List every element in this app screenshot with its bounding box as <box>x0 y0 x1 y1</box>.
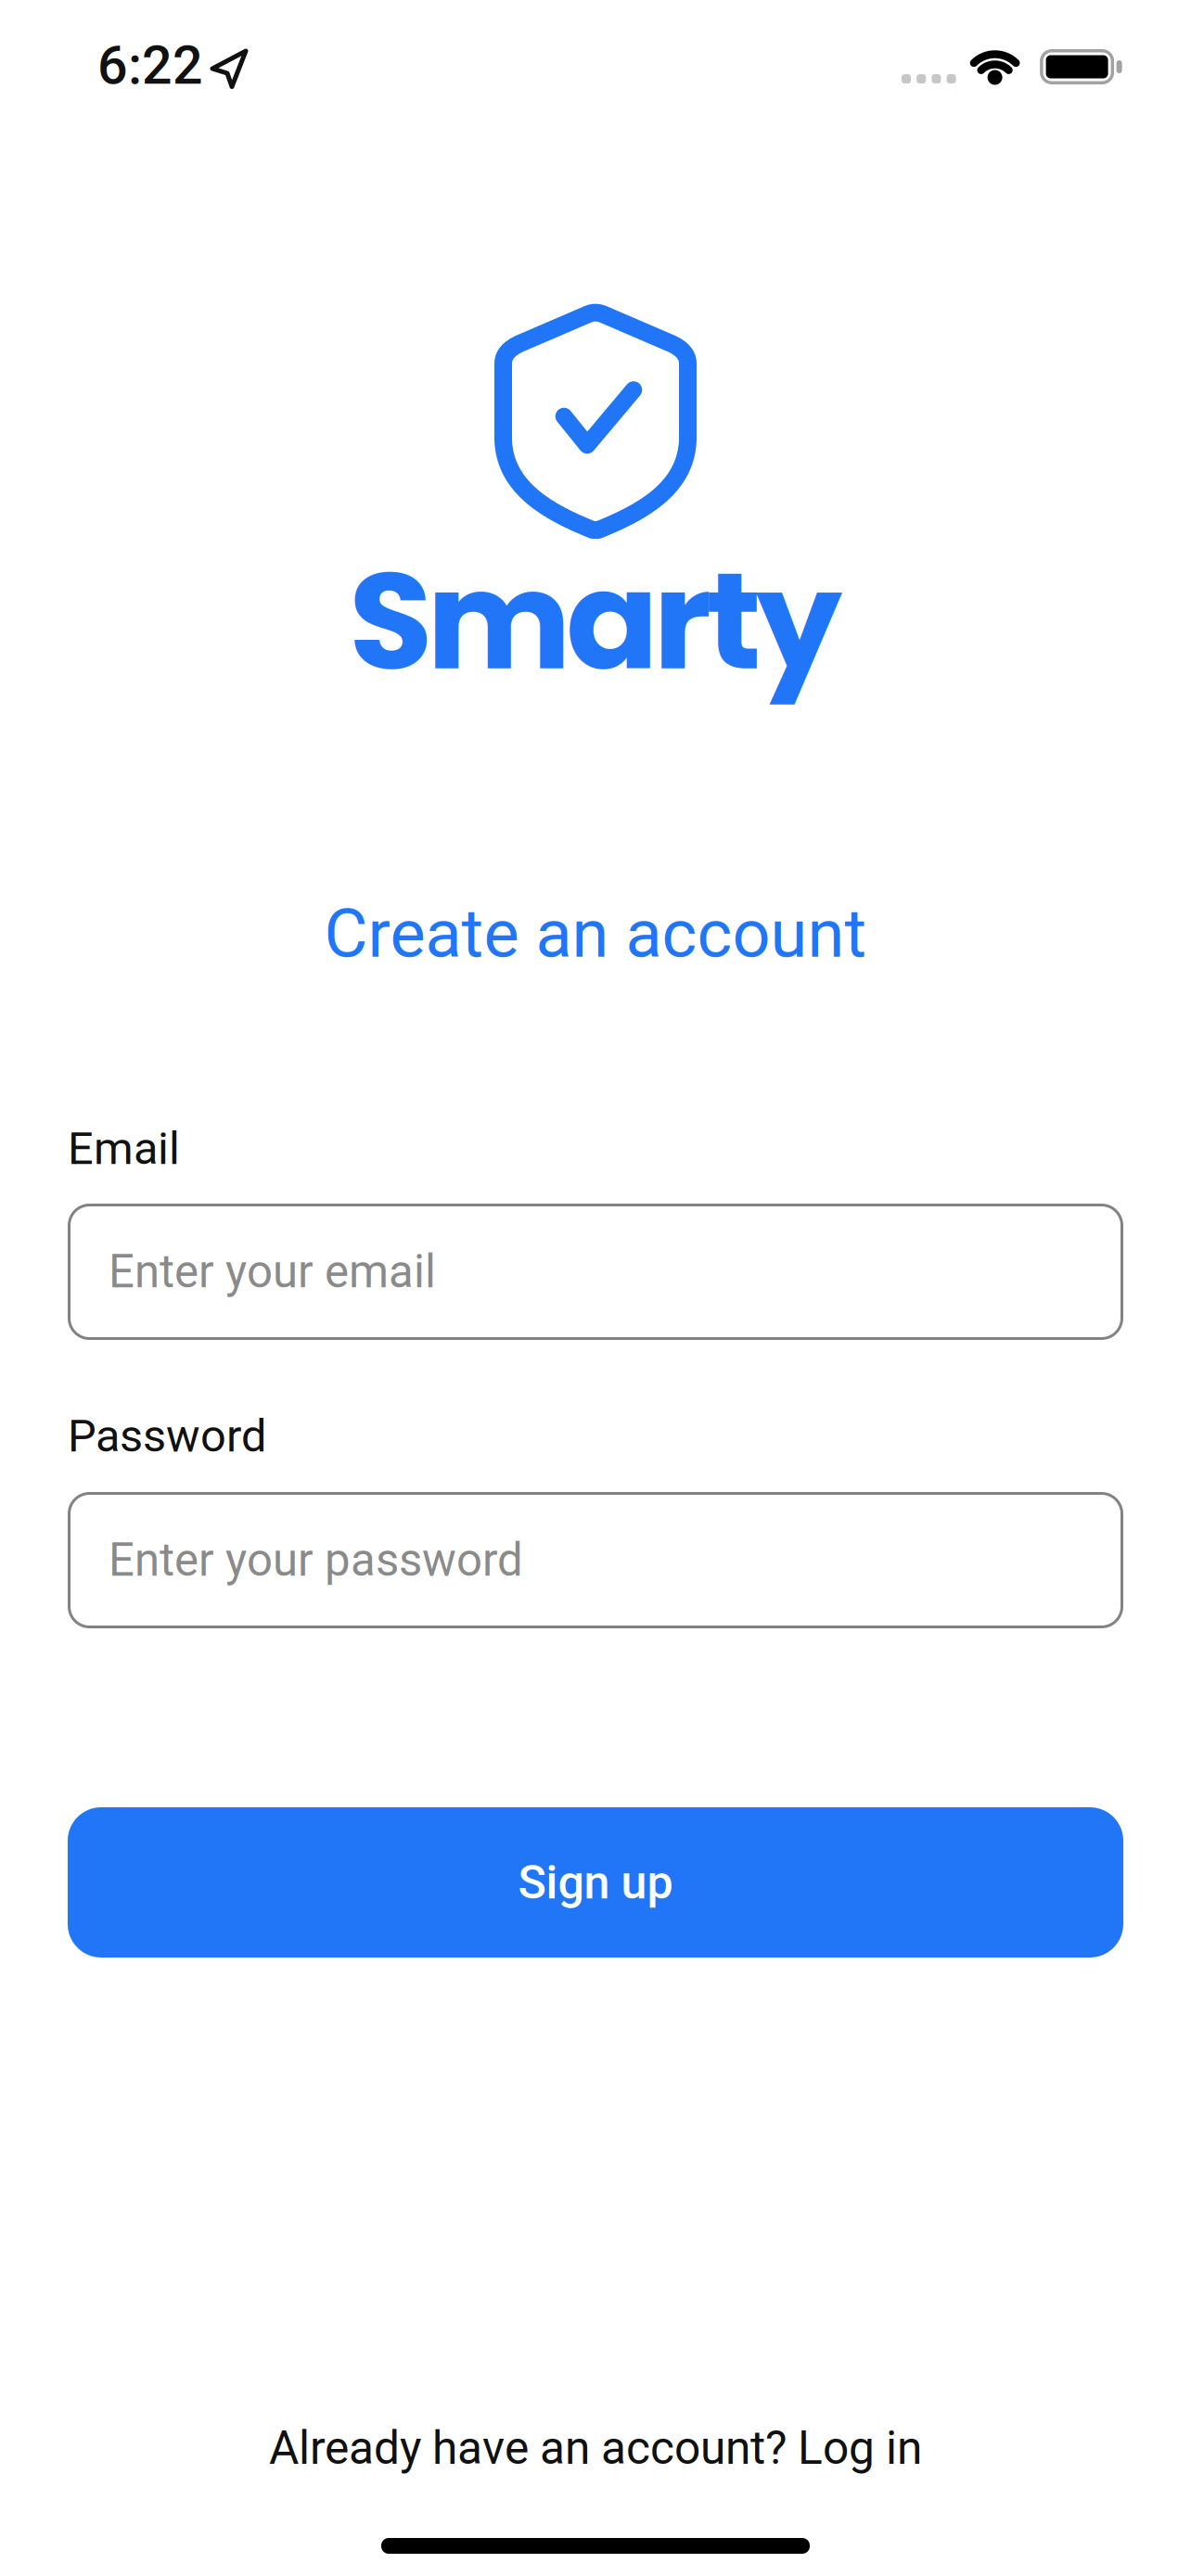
textField[interactable]: Enter your email <box>109 1245 1095 1298</box>
staticText: Password <box>68 1409 266 1462</box>
button[interactable]: Already have an account? Log in <box>269 2421 922 2475</box>
staticText: Enter your email <box>109 1245 436 1298</box>
staticText: Sign up <box>518 1855 673 1910</box>
staticText: Smarty <box>349 525 842 716</box>
staticText: Enter your password <box>109 1534 523 1587</box>
staticText: Email <box>68 1122 180 1175</box>
staticText: Enter your password <box>109 1534 523 1587</box>
staticText: Enter your email <box>109 1245 436 1298</box>
button[interactable]: Sign up <box>68 1807 1123 1958</box>
staticText: 6:22 <box>97 34 203 97</box>
staticText: Create an account <box>324 895 867 973</box>
staticText: Already have an account? Log in <box>269 2421 922 2475</box>
secureTextField[interactable]: Enter your password <box>109 1534 1095 1587</box>
